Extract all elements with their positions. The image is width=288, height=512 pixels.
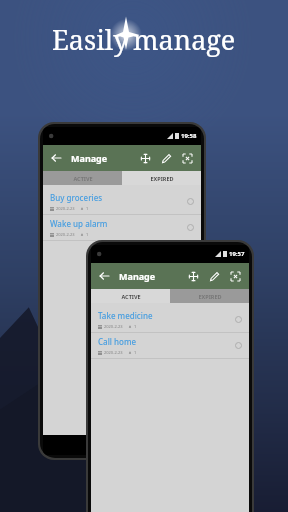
button[interactable]: Call home: [91, 333, 249, 359]
staticText: Call home: [98, 336, 137, 347]
button[interactable]: Select all: [179, 150, 195, 166]
staticText: Wake up alarm: [50, 218, 108, 229]
staticText: EXPIRED: [150, 175, 174, 182]
staticText: 19:58: [181, 132, 197, 140]
staticText: 1: [86, 232, 89, 237]
button[interactable]: Edit: [158, 150, 174, 166]
staticText: 2020-2-23: [104, 324, 123, 329]
button[interactable]: ACTIVE: [91, 289, 170, 303]
staticText: 1: [134, 324, 137, 329]
staticText: 2020-2-23: [56, 232, 75, 237]
staticText: Take medicine: [98, 310, 153, 321]
staticText: 2020-2-23: [104, 350, 123, 355]
staticText: 1: [134, 350, 137, 355]
button[interactable]: Move: [137, 150, 153, 166]
button[interactable]: EXPIRED: [170, 289, 249, 303]
staticText: Manage: [71, 152, 108, 164]
staticText: manage: [133, 21, 236, 58]
button[interactable]: Back: [49, 151, 63, 165]
button[interactable]: Select all: [227, 268, 243, 284]
staticText: 2020-2-23: [56, 206, 75, 211]
staticText: Manage: [119, 270, 156, 282]
button[interactable]: Buy groceries: [43, 189, 201, 215]
button[interactable]: Move: [185, 268, 201, 284]
button[interactable]: Wake up alarm: [43, 215, 201, 241]
staticText: ACTIVE: [73, 175, 93, 182]
staticText: ACTIVE: [121, 293, 141, 300]
button[interactable]: Back: [97, 269, 111, 283]
button[interactable]: Take medicine: [91, 307, 249, 333]
button[interactable]: Edit: [206, 268, 222, 284]
button[interactable]: ACTIVE: [43, 171, 122, 185]
staticText: EXPIRED: [198, 293, 222, 300]
staticText: 19:57: [229, 250, 245, 258]
button[interactable]: EXPIRED: [122, 171, 201, 185]
staticText: Easily: [52, 21, 129, 58]
staticText: 1: [86, 206, 89, 211]
staticText: Buy groceries: [50, 192, 103, 203]
